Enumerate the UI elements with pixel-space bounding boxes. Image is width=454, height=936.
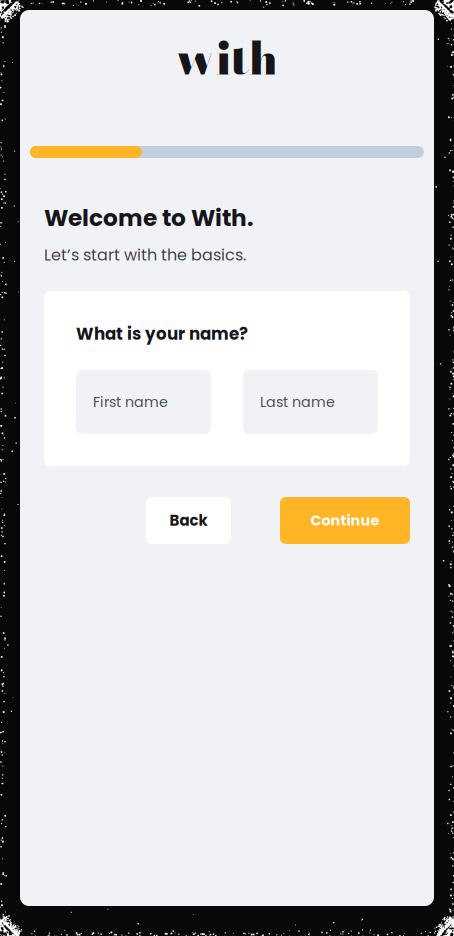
staticText: Back (169, 510, 207, 531)
button[interactable]: Back (146, 497, 231, 544)
staticText: What is your name? (76, 322, 248, 346)
staticText: Welcome to With. (44, 202, 254, 234)
staticText: Last name (260, 392, 335, 412)
button[interactable]: Last name (243, 370, 378, 434)
staticText: with (175, 23, 278, 92)
staticText: First name (93, 392, 168, 412)
staticText: Continue (310, 510, 379, 531)
staticText: Let’s start with the basics. (44, 244, 246, 266)
button[interactable]: Continue (280, 497, 410, 544)
button[interactable]: First name (76, 370, 211, 434)
